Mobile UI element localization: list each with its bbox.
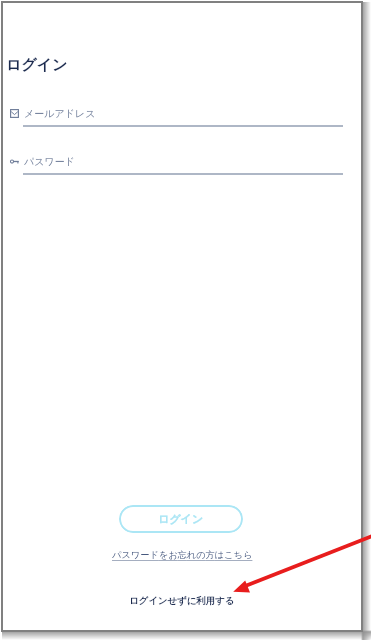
button[interactable]: ログイン bbox=[119, 505, 243, 533]
other: Password bbox=[10, 157, 19, 166]
button[interactable]: Email bbox=[7, 100, 343, 130]
staticText: メールアドレス bbox=[24, 107, 96, 120]
staticText: パスワード bbox=[24, 155, 75, 168]
staticText: ログインせずに利用する bbox=[129, 595, 235, 607]
staticText: ログイン bbox=[158, 512, 204, 526]
other: Email bbox=[10, 109, 19, 118]
button[interactable]: ログインせずに利用する bbox=[123, 592, 241, 610]
button[interactable]: パスワードをお忘れの方はこちら bbox=[108, 547, 257, 563]
staticText: パスワードをお忘れの方はこちら bbox=[112, 549, 253, 561]
button[interactable]: Password bbox=[7, 148, 343, 178]
staticText: ログイン bbox=[6, 56, 68, 75]
